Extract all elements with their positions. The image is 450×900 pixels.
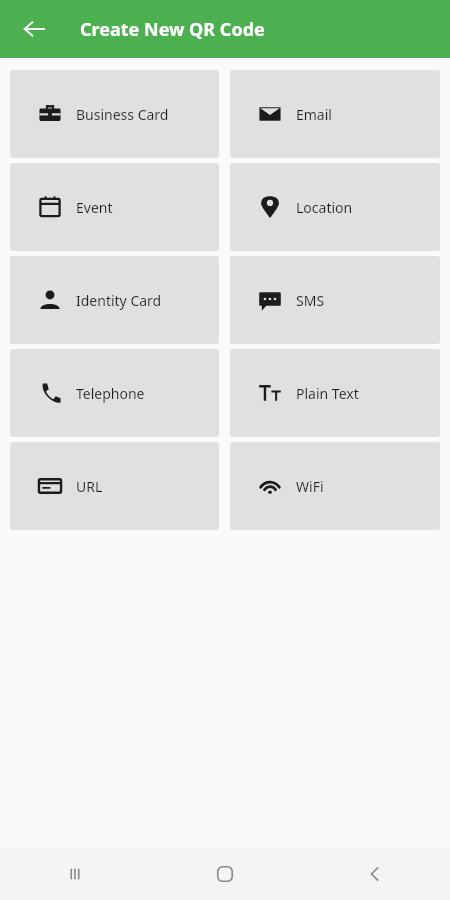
staticText: SMS: [296, 291, 325, 310]
staticText: URL: [76, 477, 103, 496]
button[interactable]: Location: [230, 163, 440, 251]
button[interactable]: Telephone: [10, 349, 219, 437]
button[interactable]: Business Card: [10, 70, 219, 158]
button[interactable]: WiFi: [230, 442, 440, 530]
staticText: Telephone: [76, 384, 145, 403]
button[interactable]: Home: [150, 848, 300, 900]
staticText: Business Card: [76, 105, 169, 124]
staticText: Create New QR Code: [80, 17, 265, 42]
button[interactable]: Plain Text: [230, 349, 440, 437]
button[interactable]: SMS: [230, 256, 440, 344]
button[interactable]: Back: [12, 7, 56, 51]
staticText: Plain Text: [296, 384, 359, 403]
button[interactable]: Identity Card: [10, 256, 219, 344]
button[interactable]: Back: [300, 848, 450, 900]
button[interactable]: Email: [230, 70, 440, 158]
button[interactable]: URL: [10, 442, 219, 530]
staticText: Email: [296, 105, 332, 124]
staticText: Event: [76, 198, 113, 217]
button[interactable]: Recent apps: [0, 848, 150, 900]
staticText: WiFi: [296, 477, 324, 496]
staticText: Identity Card: [76, 291, 162, 310]
button[interactable]: Event: [10, 163, 219, 251]
staticText: Location: [296, 198, 353, 217]
